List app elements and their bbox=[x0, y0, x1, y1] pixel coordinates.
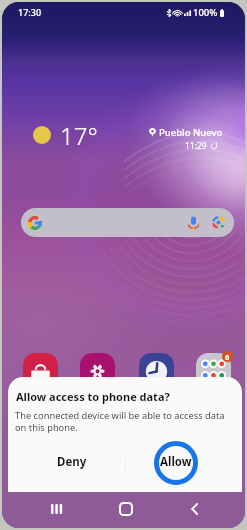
staticText: 17:30 bbox=[18, 6, 42, 18]
button[interactable]: Galaxy Store bbox=[23, 353, 58, 388]
staticText: Deny bbox=[57, 454, 87, 470]
staticText: 11:29 bbox=[185, 140, 207, 152]
button[interactable]: Allow bbox=[145, 448, 207, 475]
staticText: 100% bbox=[193, 6, 218, 19]
button[interactable]: Back bbox=[184, 498, 206, 520]
staticText: The connected device will be able to acc… bbox=[15, 409, 231, 434]
button[interactable]: Deny bbox=[41, 448, 103, 475]
button[interactable]: Recents bbox=[46, 498, 68, 520]
button[interactable]: Clock bbox=[139, 353, 174, 388]
button[interactable]: Google folder bbox=[196, 353, 231, 388]
staticText: Allow access to phone data? bbox=[16, 389, 170, 404]
button[interactable]: Home bbox=[115, 498, 137, 520]
staticText: Pueblo Nuevo bbox=[159, 126, 223, 139]
button[interactable]: Galaxy Themes bbox=[80, 353, 115, 388]
button[interactable] bbox=[21, 208, 234, 237]
staticText: 17° bbox=[60, 119, 98, 152]
staticText: 6 bbox=[225, 352, 230, 362]
staticText: Allow bbox=[160, 454, 192, 470]
